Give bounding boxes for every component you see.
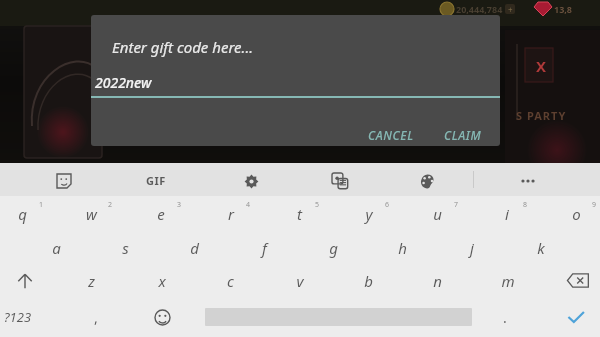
button[interactable]: t [265,196,334,231]
button[interactable]: i [472,196,541,231]
button[interactable]: n [403,264,472,297]
button[interactable]: Shift [0,264,50,297]
button[interactable]: u [403,196,472,231]
staticText: x [158,271,166,291]
staticText: n [433,271,442,291]
button[interactable]: More options [517,170,539,192]
staticText: 2022new [95,73,152,92]
staticText: GIF [146,173,166,188]
button[interactable]: a [22,231,91,264]
staticText: 20,444,784 [456,3,503,15]
staticText: u [433,204,442,224]
button[interactable]: . [483,297,527,337]
button[interactable]: k [506,231,575,264]
button[interactable]: d [160,231,229,264]
button[interactable]: Settings [240,170,262,192]
button[interactable]: b [334,264,403,297]
staticText: , [94,308,98,327]
button[interactable]: , [72,297,120,337]
button[interactable]: m [473,264,542,297]
button[interactable]: z [57,264,126,297]
staticText: d [190,238,199,258]
staticText: 5 [315,200,320,210]
button[interactable]: GIF [140,170,172,190]
staticText: 2 [108,200,113,210]
staticText: v [296,271,304,291]
staticText: . [503,308,507,327]
button[interactable]: Themes [416,170,438,192]
button[interactable]: CANCEL [364,123,418,146]
staticText: 7 [454,200,459,210]
button[interactable]: Translate [329,170,351,192]
staticText: ?123 [4,308,32,326]
staticText: 3 [177,200,182,210]
button[interactable]: f [230,231,299,264]
staticText: 6 [385,200,390,210]
staticText: 13,8 [554,3,573,15]
staticText: S PARTY [516,108,567,123]
staticText: k [537,238,545,258]
button[interactable]: s [91,231,160,264]
staticText: g [329,238,338,258]
button[interactable]: o [542,196,600,231]
button[interactable]: Stickers [53,170,75,192]
button[interactable]: j [437,231,506,264]
staticText: m [501,271,515,291]
staticText: 9 [592,200,597,210]
staticText: h [398,238,407,258]
staticText: q [18,204,27,224]
staticText: X [536,56,547,76]
staticText: t [297,204,302,224]
button[interactable]: ?123 [0,297,52,337]
staticText: b [364,271,373,291]
staticText: z [88,271,95,291]
staticText: 1 [39,200,44,210]
staticText: c [227,271,234,291]
staticText: o [572,204,581,224]
staticText: f [262,238,267,258]
button[interactable]: x [127,264,196,297]
button[interactable]: y [334,196,403,231]
button[interactable]: Emoji [140,297,184,337]
button[interactable]: v [265,264,334,297]
button[interactable]: w [57,196,126,231]
staticText: 8 [523,200,528,210]
staticText: j [470,238,474,258]
button[interactable]: Backspace [555,264,600,297]
button[interactable]: q [0,196,57,231]
button[interactable]: e [126,196,195,231]
button[interactable]: 2022new [91,73,500,92]
staticText: y [365,204,373,224]
staticText: e [157,204,165,224]
staticText: 4 [246,200,251,210]
staticText: a [52,238,61,258]
button[interactable]: Enter [552,297,600,337]
staticText: + [508,4,513,14]
staticText: r [228,204,234,224]
button[interactable]: CLAIM [440,123,486,146]
staticText: w [86,204,97,224]
staticText: s [122,238,129,258]
button[interactable]: h [368,231,437,264]
staticText: CLAIM [444,127,482,142]
button[interactable]: g [299,231,368,264]
button[interactable]: r [196,196,265,231]
staticText: CANCEL [368,127,414,142]
staticText: i [505,204,509,224]
button[interactable]: c [196,264,265,297]
staticText: Enter gift code here... [112,37,254,57]
